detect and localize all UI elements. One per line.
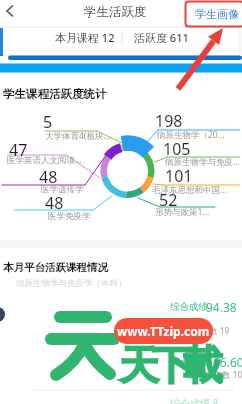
staticText: 105 bbox=[163, 138, 191, 160]
button[interactable] bbox=[186, 2, 242, 26]
staticText: 47 bbox=[9, 139, 28, 161]
staticText: 天 bbox=[119, 340, 159, 390]
staticText: 48 bbox=[39, 166, 58, 188]
button[interactable] bbox=[0, 276, 242, 340]
staticText: 综合成绩 bbox=[171, 356, 209, 368]
staticText: 综合成绩 bbox=[170, 301, 208, 313]
staticText: 学生课程活跃度统计 bbox=[3, 87, 107, 101]
staticText: 病原生物学（20... bbox=[157, 129, 225, 141]
staticText: 198 bbox=[155, 110, 183, 132]
staticText: www.TTzip.com bbox=[117, 323, 210, 339]
staticText: 活跃度 611 bbox=[134, 30, 189, 45]
staticText: 病原生物学与免疫学（本科） bbox=[16, 278, 127, 289]
staticText: 48 bbox=[45, 192, 64, 214]
staticText: 医学免疫学 bbox=[48, 211, 91, 222]
staticText: 病原生物学与免疫... bbox=[165, 156, 240, 168]
staticText: 大学体育4(板块... bbox=[45, 130, 111, 142]
staticText: 66.60 bbox=[213, 354, 242, 370]
staticText: 毛泽东思想和中国... bbox=[152, 184, 227, 196]
staticText: 5 bbox=[43, 111, 53, 133]
staticText: 形势与政策1... bbox=[155, 206, 210, 218]
staticText: 本月平台活跃课程情况 bbox=[3, 261, 108, 274]
staticText: 活动参与数 10 bbox=[188, 369, 242, 381]
staticText: 学生活跃度 bbox=[84, 4, 147, 20]
staticText: 52 bbox=[159, 189, 178, 211]
staticText: 下 bbox=[152, 340, 192, 390]
button[interactable] bbox=[0, 340, 242, 392]
staticText: 综合成绩 8 bbox=[170, 396, 219, 404]
staticText: 医学遗传学 bbox=[41, 184, 84, 195]
staticText: 101 bbox=[165, 165, 193, 187]
button[interactable] bbox=[2, 27, 240, 56]
staticText: 本月课程 12 bbox=[55, 30, 115, 45]
staticText: 活动参与数 19 bbox=[175, 325, 230, 337]
button[interactable] bbox=[0, 0, 40, 26]
staticText: 医学英语人文阅读... bbox=[7, 154, 82, 166]
staticText: 学生画像 bbox=[195, 7, 239, 21]
staticText: 94.38 bbox=[206, 299, 237, 315]
staticText: 載 bbox=[183, 340, 223, 390]
